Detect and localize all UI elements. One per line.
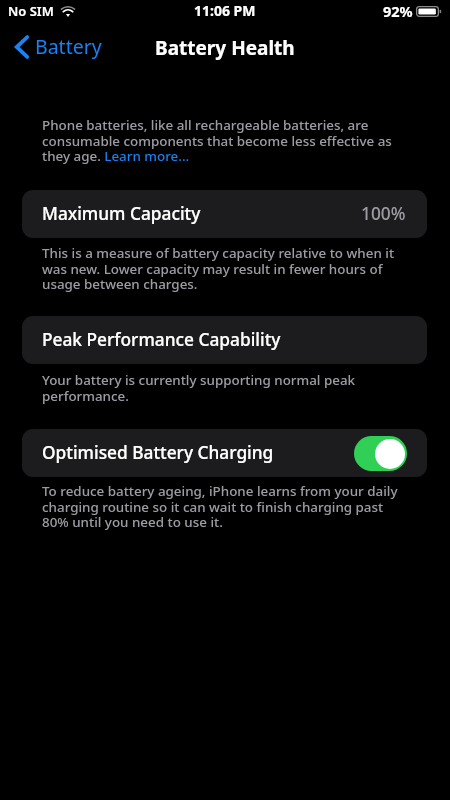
staticText: 11:06 PM	[194, 1, 256, 20]
staticText: Phone batteries, like all rechargeable b…	[42, 116, 392, 165]
button[interactable]: Optimised Battery Charging toggle	[354, 436, 407, 471]
staticText: No SIM	[8, 2, 54, 20]
staticText: To reduce battery ageing, iPhone learns …	[42, 482, 402, 531]
staticText: Battery	[35, 33, 102, 60]
staticText: Optimised Battery Charging	[42, 441, 274, 465]
staticText: Battery Health	[155, 35, 295, 61]
staticText: 100%	[361, 202, 406, 226]
staticText: Your battery is currently supporting nor…	[42, 371, 402, 405]
button[interactable]: Maximum Capacity	[22, 190, 427, 238]
button[interactable]: Peak Performance Capability	[22, 316, 427, 364]
button[interactable]: Optimised Battery Charging	[22, 429, 427, 477]
staticText: Maximum Capacity	[42, 202, 201, 226]
staticText: This is a measure of battery capacity re…	[42, 244, 402, 293]
button[interactable]: Battery	[14, 33, 102, 60]
staticText: Peak Performance Capability	[42, 328, 281, 352]
staticText: 92%	[383, 1, 413, 21]
